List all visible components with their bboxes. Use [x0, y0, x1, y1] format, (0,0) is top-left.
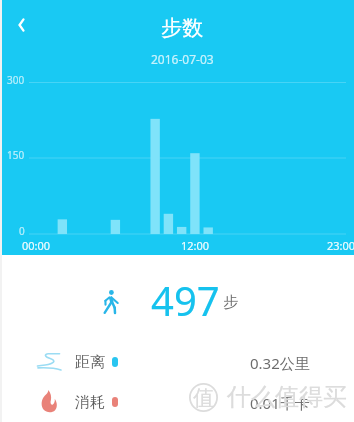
staticText: 消耗 [75, 393, 105, 412]
staticText: 12:00 [181, 238, 210, 253]
staticText: 步 [223, 293, 238, 312]
staticText: 0.32公里 [250, 353, 310, 373]
staticText: 2016-07-03 [151, 51, 214, 67]
staticText: 值 [193, 385, 214, 411]
staticText: 00:00 [22, 238, 51, 253]
staticText: 距离 [75, 353, 105, 372]
staticText: 0 [19, 224, 25, 238]
button[interactable]: 距离 [2, 345, 354, 377]
staticText: 什么值得买 [227, 382, 347, 412]
button[interactable]: Back [7, 11, 35, 39]
staticText: 497 [151, 273, 220, 327]
staticText: 0.01千卡 [250, 393, 310, 413]
button[interactable]: 消耗 [2, 385, 354, 417]
staticText: 23:00 [327, 238, 354, 253]
staticText: 步数 [161, 15, 203, 41]
staticText: 300 [7, 73, 25, 87]
staticText: 150 [7, 148, 25, 162]
